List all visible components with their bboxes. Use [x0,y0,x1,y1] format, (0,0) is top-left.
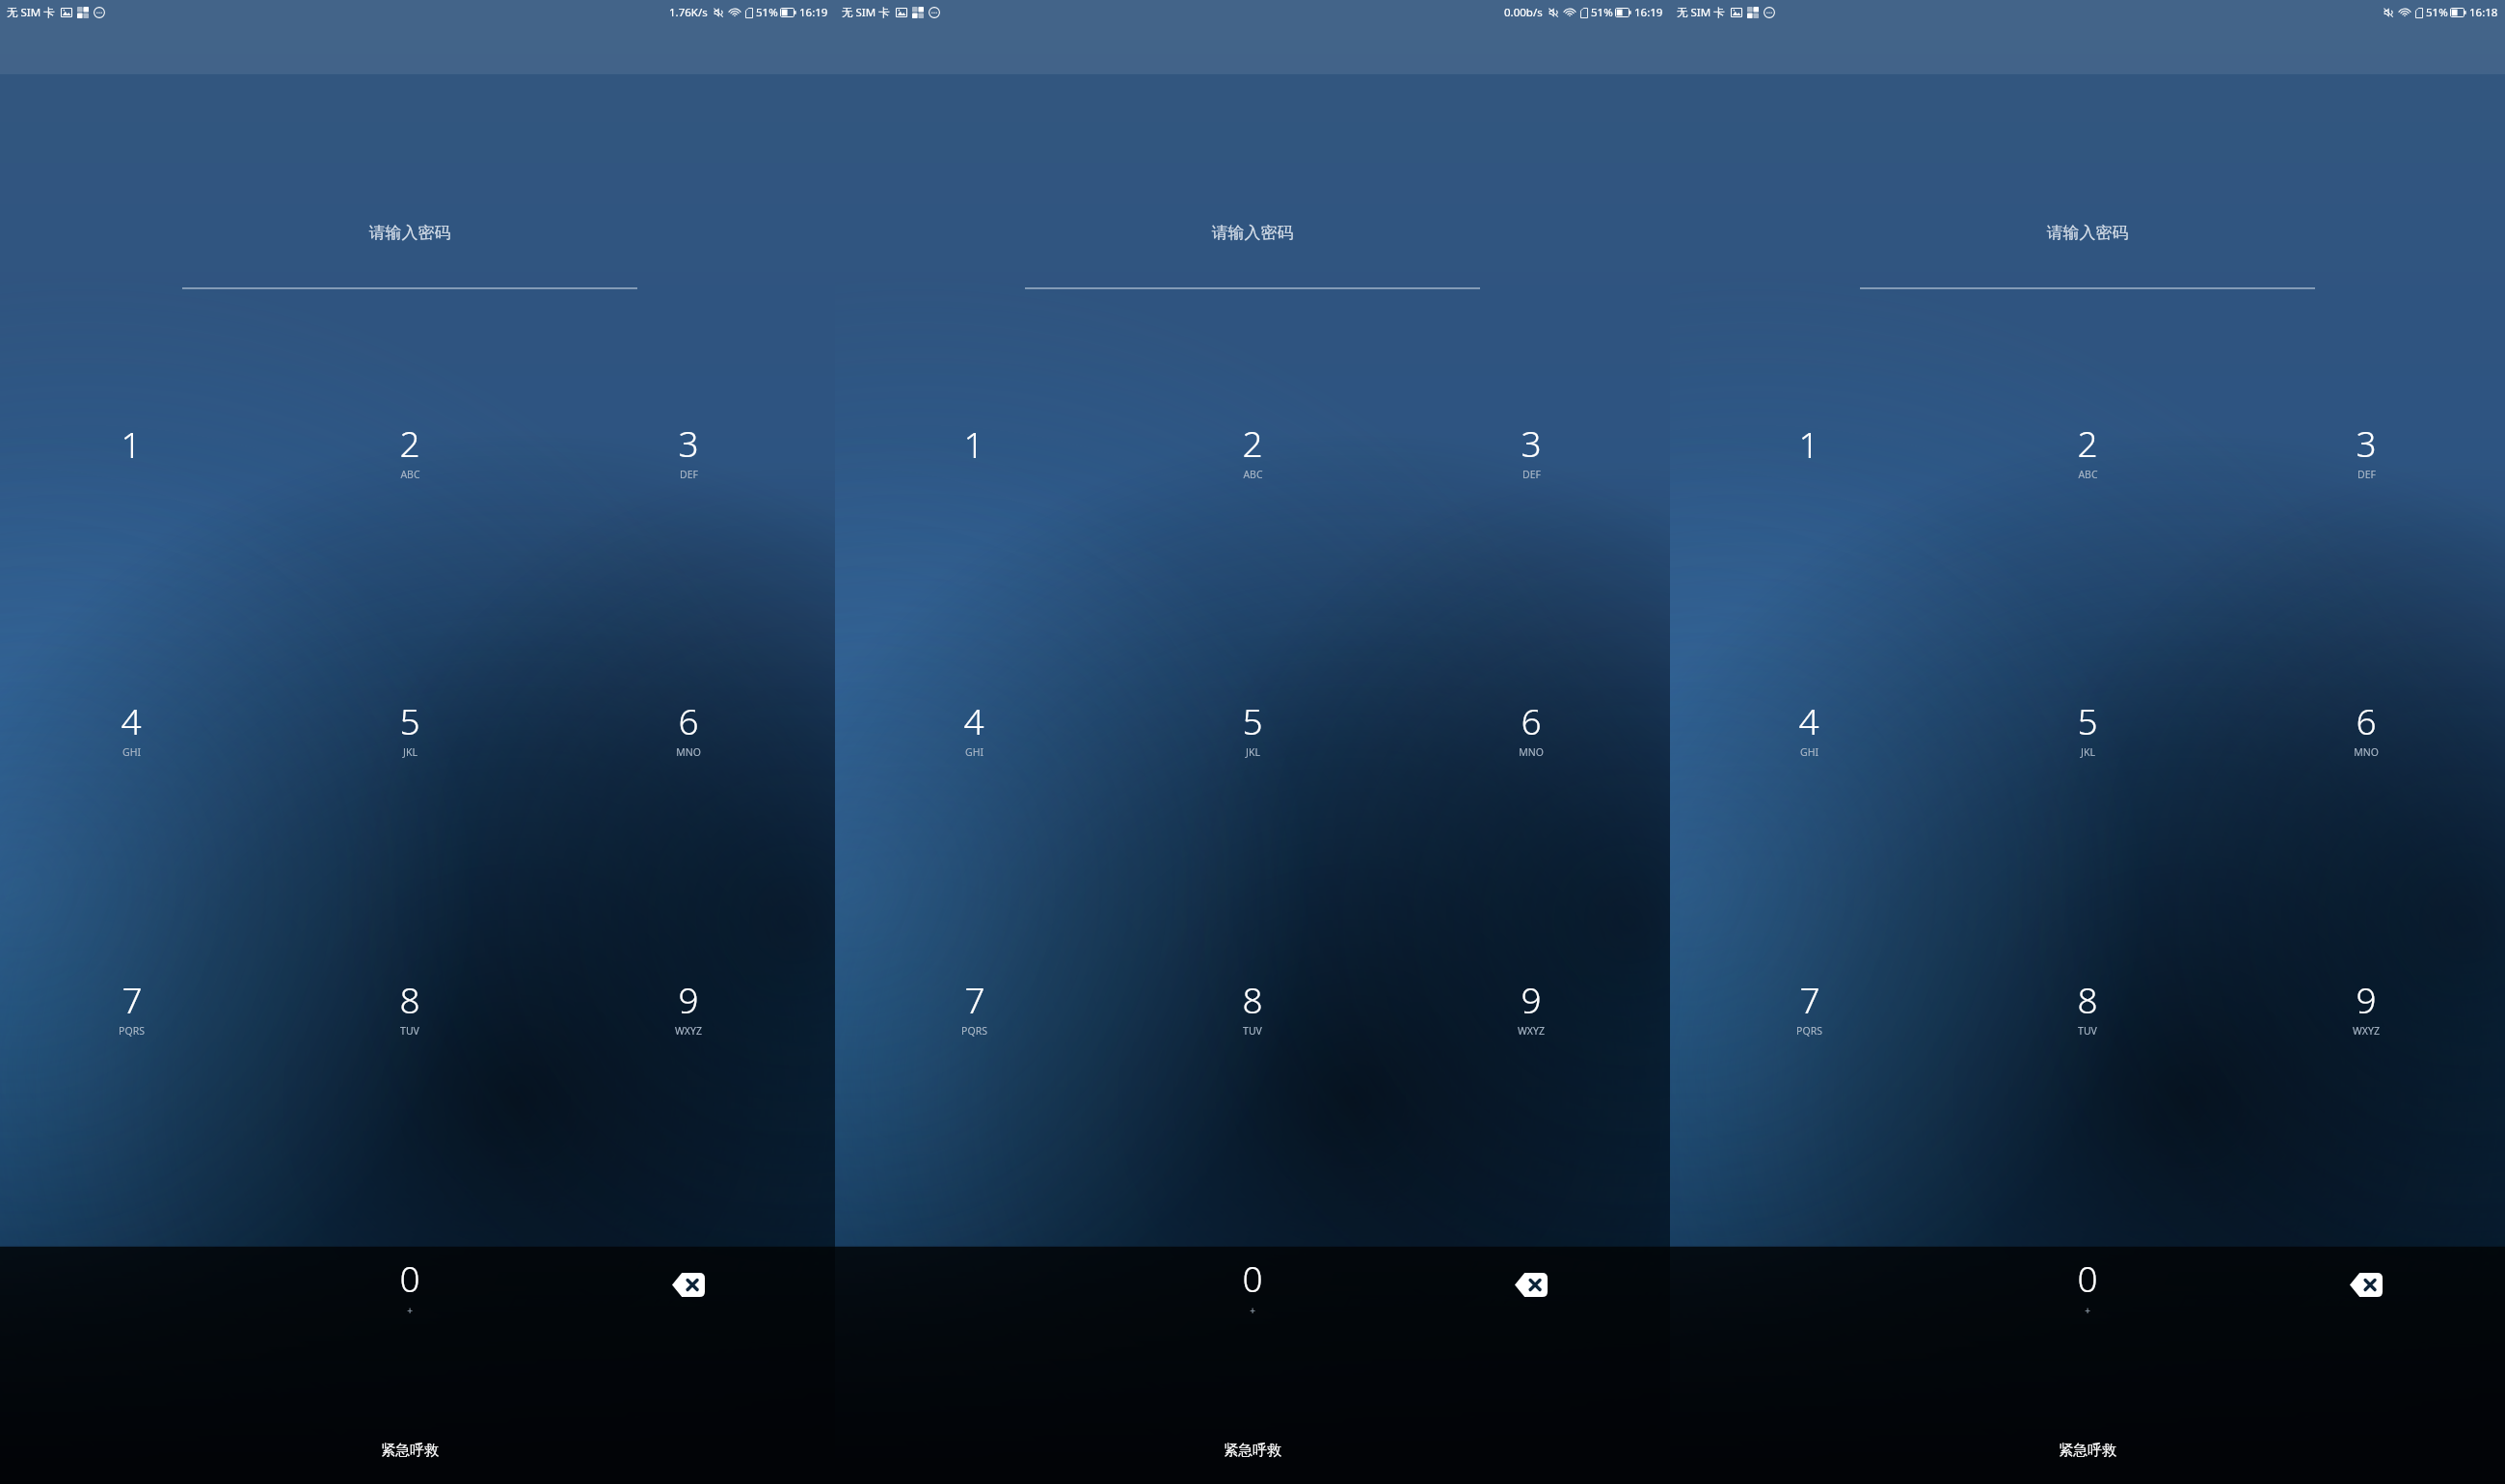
button[interactable]: 紧急呼救 [0,1424,827,1476]
staticText: 请输入密码 [835,223,1670,243]
staticText: DEF [2357,468,2376,481]
staticText: 6 [678,696,699,744]
staticText: JKL [1246,745,1260,759]
staticText: 无 SIM 卡 [7,5,55,20]
button[interactable]: 4 [0,588,270,867]
button[interactable]: 7 [0,867,270,1146]
staticText: 2 [2077,418,2098,467]
button[interactable]: 0 [270,1146,549,1424]
staticText: 9 [1521,975,1542,1023]
staticText: MNO [1519,745,1544,759]
staticText: 8 [1242,975,1263,1023]
staticText: 1.76K/s [669,5,708,20]
staticText: 16:19 [1634,5,1663,20]
staticText: 5 [1242,696,1263,744]
button[interactable]: 8 [270,867,549,1146]
staticText: 7 [964,975,985,1023]
button[interactable]: 1 [835,310,1113,588]
staticText: 6 [2356,696,2377,744]
staticText: WXYZ [675,1024,702,1038]
staticText: 2 [1242,418,1263,467]
staticText: 8 [2077,975,2098,1023]
button[interactable]: 2 [270,310,549,588]
staticText: 请输入密码 [0,223,827,243]
staticText: PQRS [961,1024,987,1038]
button[interactable]: 1 [1670,310,1948,588]
button[interactable]: 5 [270,588,549,867]
staticText: TUV [1243,1024,1262,1038]
button[interactable]: 2 [1113,310,1391,588]
staticText: 51% [2426,5,2448,20]
staticText: ABC [400,468,420,481]
button[interactable]: 6 [2226,588,2505,867]
staticText: 紧急呼救 [2059,1442,2116,1460]
staticText: JKL [403,745,417,759]
staticText: PQRS [1796,1024,1822,1038]
staticText: TUV [2078,1024,2097,1038]
staticText: 0.00b/s [1504,5,1543,20]
button[interactable]: 9 [1391,867,1670,1146]
staticText: 4 [1798,696,1819,744]
staticText: 无 SIM 卡 [842,5,890,20]
staticText: 7 [121,975,143,1023]
staticText: WXYZ [2353,1024,2380,1038]
staticText: 6 [1521,696,1542,744]
staticText: 4 [121,696,142,744]
button[interactable]: 紧急呼救 [835,1424,1670,1476]
staticText: MNO [676,745,701,759]
staticText: 3 [678,418,699,467]
staticText: DEF [1522,468,1541,481]
staticText: 紧急呼救 [1224,1442,1281,1460]
staticText: GHI [122,745,141,759]
staticText: 51% [756,5,778,20]
button[interactable]: Delete [549,1146,827,1424]
staticText: 8 [399,975,420,1023]
button[interactable]: 3 [549,310,827,588]
staticText: 4 [963,696,984,744]
button[interactable]: 4 [835,588,1113,867]
button[interactable]: 2 [1948,310,2226,588]
button[interactable]: 4 [1670,588,1948,867]
button[interactable]: 3 [1391,310,1670,588]
staticText: WXYZ [1518,1024,1545,1038]
staticText: 1 [963,419,984,468]
staticText: + [407,1304,413,1317]
staticText: 紧急呼救 [381,1442,439,1460]
button[interactable]: 9 [2226,867,2505,1146]
button[interactable]: 5 [1948,588,2226,867]
staticText: ABC [1243,468,1263,481]
staticText: 1 [1798,419,1819,468]
staticText: 无 SIM 卡 [1677,5,1725,20]
button[interactable]: Delete [1391,1146,1670,1424]
staticText: 2 [399,418,420,467]
staticText: DEF [680,468,698,481]
staticText: TUV [400,1024,419,1038]
button[interactable]: 7 [1670,867,1948,1146]
button[interactable]: 3 [2226,310,2505,588]
button[interactable]: 紧急呼救 [1670,1424,2505,1476]
staticText: 16:18 [2469,5,2498,20]
staticText: GHI [965,745,983,759]
staticText: 7 [1799,975,1820,1023]
button[interactable]: Delete [2226,1146,2505,1424]
staticText: 9 [678,975,699,1023]
button[interactable]: 1 [0,310,270,588]
staticText: 9 [2356,975,2377,1023]
button[interactable]: 6 [549,588,827,867]
staticText: GHI [1800,745,1818,759]
button[interactable]: 5 [1113,588,1391,867]
button[interactable]: 6 [1391,588,1670,867]
button[interactable]: 9 [549,867,827,1146]
staticText: 3 [2356,418,2377,467]
button[interactable]: 7 [835,867,1113,1146]
staticText: JKL [2081,745,2095,759]
staticText: 5 [2077,696,2098,744]
button[interactable]: 8 [1948,867,2226,1146]
staticText: PQRS [119,1024,145,1038]
staticText: 3 [1521,418,1542,467]
button[interactable]: 8 [1113,867,1391,1146]
button[interactable]: 0 [1948,1146,2226,1424]
button[interactable]: 0 [1113,1146,1391,1424]
staticText: 16:19 [799,5,828,20]
staticText: 0 [1242,1254,1263,1302]
